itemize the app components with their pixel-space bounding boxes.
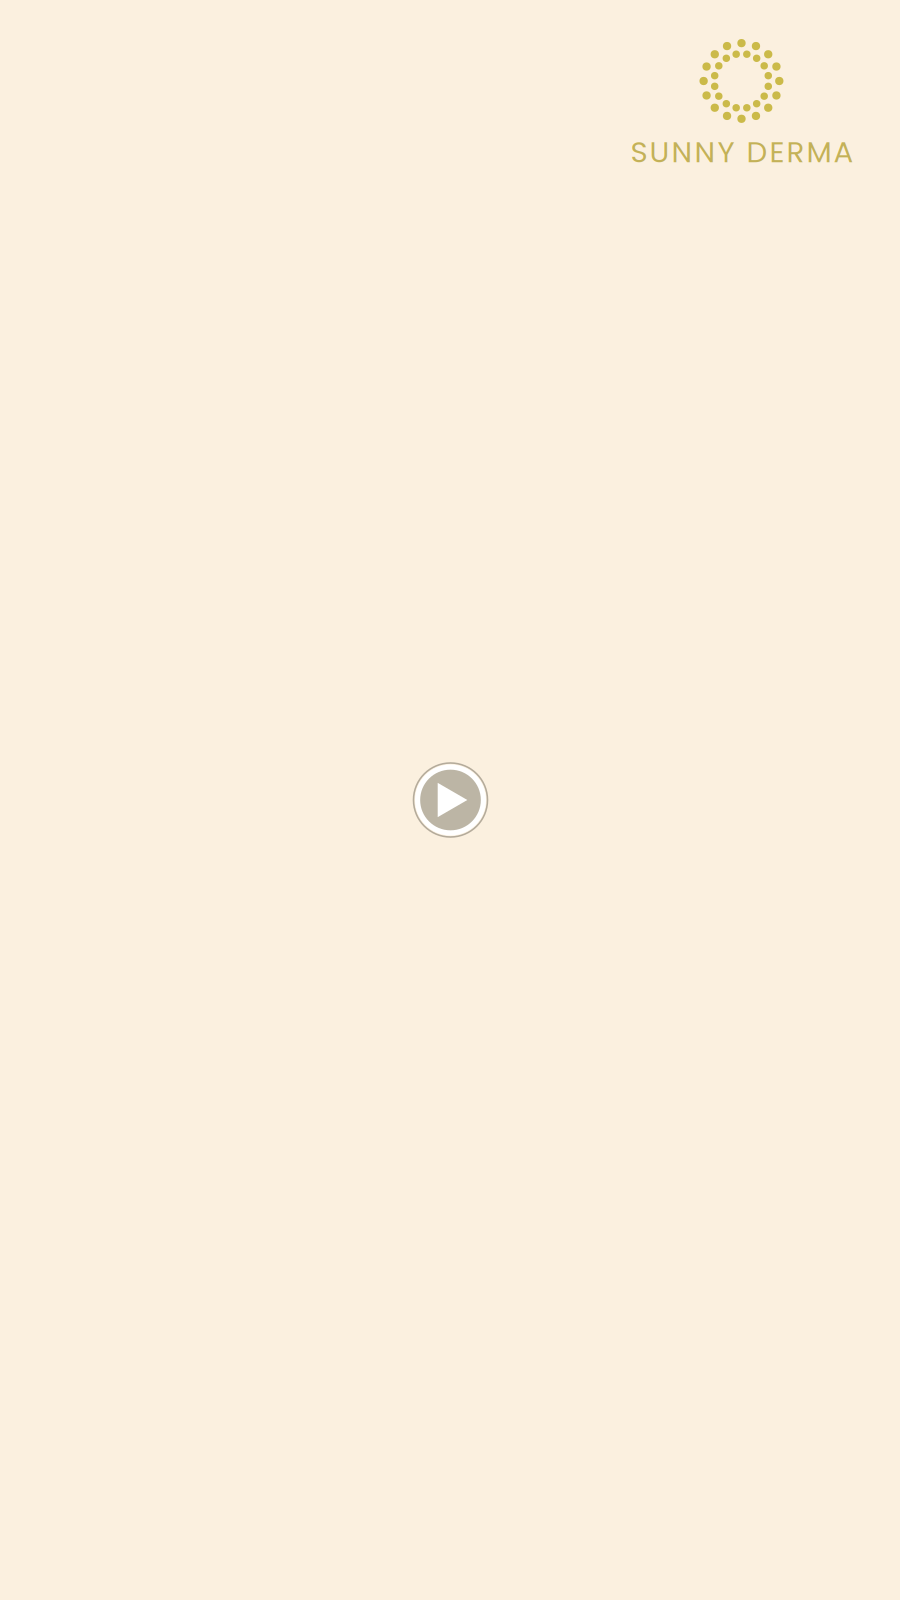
staticText: S U N N Y D E R M A — [630, 131, 853, 173]
button[interactable]: Play — [413, 763, 487, 837]
